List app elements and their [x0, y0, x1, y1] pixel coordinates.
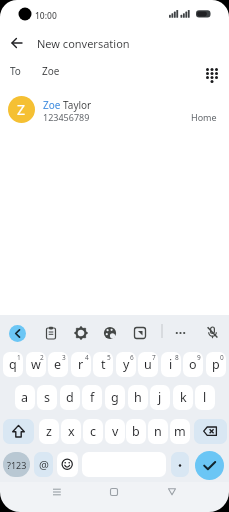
button[interactable]: [205, 325, 220, 340]
staticText: e: [54, 356, 62, 373]
button[interactable]: o: [183, 352, 203, 377]
staticText: z: [46, 423, 52, 440]
staticText: 7: [152, 353, 156, 362]
staticText: i: [169, 356, 173, 373]
staticText: 9: [197, 353, 201, 362]
staticText: b: [132, 423, 140, 440]
button[interactable]: f: [82, 385, 102, 410]
button[interactable]: n: [148, 419, 168, 444]
button[interactable]: w: [26, 352, 46, 377]
staticText: s: [44, 389, 50, 406]
staticText: Zoe: [42, 64, 60, 78]
button[interactable]: v: [105, 419, 125, 444]
button[interactable]: [74, 326, 88, 340]
staticText: g: [111, 389, 119, 406]
button[interactable]: a: [15, 385, 35, 410]
staticText: o: [189, 356, 197, 373]
button[interactable]: [48, 483, 66, 501]
staticText: d: [66, 389, 74, 406]
button[interactable]: [0, 92, 229, 130]
button[interactable]: y: [116, 352, 136, 377]
staticText: ?123: [7, 459, 27, 471]
staticText: n: [154, 423, 162, 440]
staticText: m: [174, 423, 186, 440]
staticText: 0: [220, 353, 224, 362]
button[interactable]: d: [60, 385, 80, 410]
button[interactable]: [103, 326, 117, 340]
button[interactable]: [194, 419, 227, 444]
button[interactable]: j: [150, 385, 170, 410]
staticText: w: [31, 356, 41, 373]
button[interactable]: h: [128, 385, 148, 410]
button[interactable]: [105, 483, 123, 501]
button[interactable]: [174, 326, 188, 340]
staticText: y: [123, 356, 130, 373]
button[interactable]: [163, 483, 181, 501]
staticText: Zoe Taylor: [43, 98, 92, 112]
button[interactable]: [195, 451, 224, 480]
staticText: New conversation: [37, 36, 130, 51]
button[interactable]: k: [173, 385, 193, 410]
staticText: 10:00: [35, 10, 57, 22]
button[interactable]: s: [37, 385, 57, 410]
button[interactable]: u: [138, 352, 158, 377]
button[interactable]: [171, 452, 189, 477]
button[interactable]: [133, 326, 147, 340]
staticText: Z: [17, 100, 26, 119]
button[interactable]: e: [48, 352, 68, 377]
staticText: c: [90, 423, 97, 440]
button[interactable]: [9, 325, 26, 342]
staticText: @: [39, 457, 49, 472]
staticText: p: [212, 356, 220, 373]
staticText: j: [158, 389, 162, 406]
button[interactable]: m: [170, 419, 190, 444]
button[interactable]: [8, 34, 26, 52]
button[interactable]: [57, 452, 78, 477]
button[interactable]: [3, 419, 34, 444]
staticText: 6: [130, 353, 134, 362]
staticText: u: [144, 356, 152, 373]
staticText: f: [90, 389, 95, 406]
staticText: Home: [191, 111, 217, 123]
staticText: 5: [107, 353, 111, 362]
staticText: 4: [85, 353, 89, 362]
button[interactable]: r: [71, 352, 91, 377]
staticText: k: [180, 389, 187, 406]
staticText: x: [68, 423, 75, 440]
staticText: 1: [17, 353, 21, 362]
button[interactable]: x: [61, 419, 81, 444]
staticText: 8: [175, 353, 179, 362]
button[interactable]: [202, 64, 222, 86]
button[interactable]: g: [105, 385, 125, 410]
button[interactable]: l: [195, 385, 215, 410]
button[interactable]: p: [206, 352, 226, 377]
button[interactable]: ?123: [3, 452, 30, 477]
staticText: t: [101, 356, 106, 373]
staticText: a: [21, 389, 29, 406]
staticText: To: [10, 64, 21, 78]
staticText: l: [203, 389, 207, 406]
button[interactable]: i: [161, 352, 181, 377]
staticText: r: [78, 356, 84, 373]
button[interactable]: b: [126, 419, 146, 444]
staticText: 3: [62, 353, 66, 362]
button[interactable]: z: [39, 419, 59, 444]
staticText: h: [134, 389, 142, 406]
button[interactable]: @: [34, 452, 53, 477]
button[interactable]: q: [3, 352, 23, 377]
button[interactable]: t: [93, 352, 113, 377]
staticText: 2: [40, 353, 44, 362]
staticText: q: [9, 356, 17, 373]
button[interactable]: [44, 326, 58, 340]
staticText: v: [112, 423, 119, 440]
button[interactable]: c: [83, 419, 103, 444]
staticText: 123456789: [43, 111, 90, 123]
